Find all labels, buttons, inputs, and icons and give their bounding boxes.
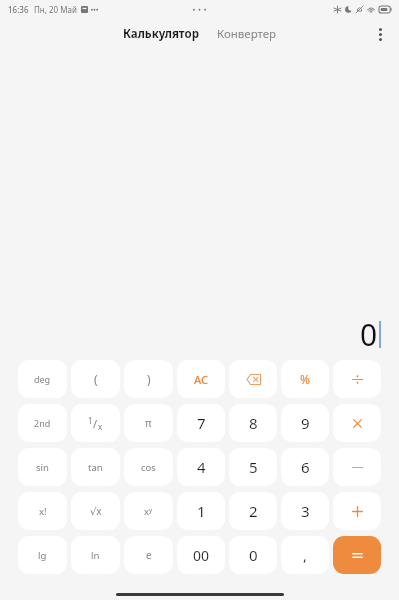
button[interactable]: Backspace — [229, 360, 277, 398]
button[interactable]: sin — [18, 448, 67, 486]
staticText: cos — [141, 461, 156, 474]
staticText: 1 — [88, 415, 93, 426]
button[interactable]: 1/x — [71, 404, 120, 442]
staticText: tan — [88, 461, 103, 474]
button[interactable]: AC — [177, 360, 225, 398]
staticText: 1 — [197, 501, 206, 521]
button[interactable]: , — [281, 536, 329, 574]
button[interactable]: 2nd — [18, 404, 67, 442]
staticText: e — [146, 548, 152, 562]
button[interactable]: More options — [367, 21, 393, 47]
button[interactable]: ln — [71, 536, 120, 574]
button[interactable]: 7 — [177, 404, 225, 442]
button[interactable]: √x — [71, 492, 120, 530]
button[interactable]: 8 — [229, 404, 277, 442]
button[interactable]: % — [281, 360, 329, 398]
button[interactable]: Multiply — [333, 404, 381, 442]
staticText: 0 — [249, 545, 258, 565]
staticText: 00 — [193, 546, 210, 565]
button[interactable]: lg — [18, 536, 67, 574]
button[interactable]: x! — [18, 492, 67, 530]
button[interactable]: Divide — [333, 360, 381, 398]
staticText: sin — [36, 461, 49, 474]
staticText: 0 — [360, 314, 378, 355]
staticText: xʸ — [144, 505, 153, 518]
staticText: % — [300, 371, 310, 387]
staticText: 6 — [301, 457, 310, 477]
button[interactable]: 9 — [281, 404, 329, 442]
staticText: AC — [194, 372, 208, 387]
staticText: Конвертер — [217, 26, 277, 42]
staticText: 3 — [301, 501, 310, 521]
staticText: 8 — [249, 413, 258, 433]
button[interactable]: 4 — [177, 448, 225, 486]
button[interactable]: tan — [71, 448, 120, 486]
button[interactable]: xʸ — [124, 492, 173, 530]
button[interactable]: cos — [124, 448, 173, 486]
button[interactable]: 00 — [177, 536, 225, 574]
staticText: / — [93, 416, 98, 431]
staticText: x! — [39, 505, 47, 518]
staticText: 9 — [301, 413, 310, 433]
staticText: ( — [94, 371, 98, 387]
staticText: x — [98, 421, 103, 432]
button[interactable]: 5 — [229, 448, 277, 486]
staticText: , — [303, 546, 307, 565]
staticText: Калькулятор — [123, 26, 200, 42]
staticText: 7 — [197, 413, 206, 433]
button[interactable]: ( — [71, 360, 120, 398]
staticText: ln — [91, 549, 100, 562]
staticText: 2 — [249, 501, 258, 521]
staticText: Пн, 20 Май — [34, 4, 77, 15]
button[interactable]: Конвертер — [213, 23, 281, 45]
button[interactable]: Minus — [333, 448, 381, 486]
staticText: 4 — [197, 457, 206, 477]
staticText: √x — [90, 504, 102, 518]
button[interactable]: Plus — [333, 492, 381, 530]
staticText: 16:36 — [8, 4, 29, 15]
button[interactable]: Equals — [333, 536, 381, 574]
staticText: 5 — [249, 457, 258, 477]
button[interactable]: Калькулятор — [119, 23, 204, 45]
button[interactable]: π — [124, 404, 173, 442]
button[interactable]: 6 — [281, 448, 329, 486]
button[interactable]: e — [124, 536, 173, 574]
button[interactable]: 1 — [177, 492, 225, 530]
button[interactable]: ) — [124, 360, 173, 398]
button[interactable]: 0 — [229, 536, 277, 574]
button[interactable]: deg — [18, 360, 67, 398]
staticText: lg — [38, 549, 47, 562]
staticText: deg — [34, 373, 51, 385]
button[interactable]: 2 — [229, 492, 277, 530]
button[interactable]: 3 — [281, 492, 329, 530]
staticText: 2nd — [34, 417, 51, 429]
staticText: ) — [147, 371, 151, 387]
staticText: π — [145, 416, 152, 430]
